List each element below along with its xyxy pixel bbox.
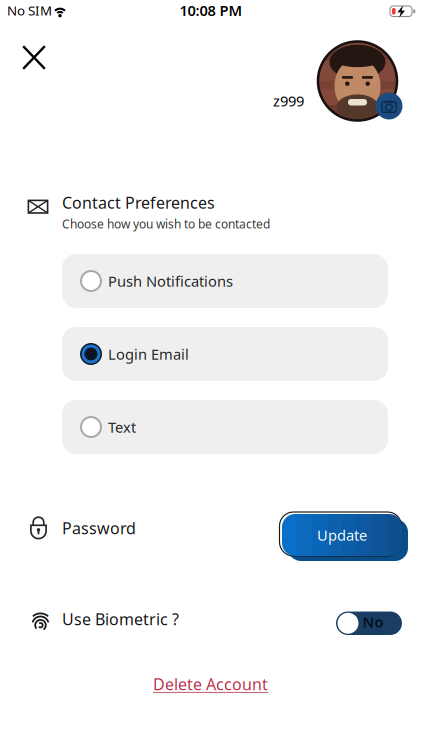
button[interactable]: Change profile photo — [375, 92, 402, 119]
staticText: z999 — [273, 91, 304, 110]
staticText: Choose how you wish to be contacted — [62, 216, 270, 232]
staticText: No SIM — [7, 1, 52, 19]
button[interactable]: Login Email — [62, 327, 388, 381]
button[interactable]: Push Notifications — [62, 254, 388, 308]
staticText: No — [362, 612, 383, 631]
staticText: Push Notifications — [108, 271, 233, 291]
button[interactable]: Text — [62, 400, 388, 454]
staticText: Text — [108, 417, 136, 437]
button[interactable]: Update — [270, 502, 404, 558]
staticText: Use Biometric ? — [62, 608, 179, 630]
staticText: 10:08 PM — [179, 0, 242, 20]
staticText: Password — [62, 517, 136, 539]
staticText: Update — [317, 525, 367, 545]
staticText: Contact Preferences — [62, 192, 215, 213]
button[interactable]: Delete Account — [153, 673, 268, 695]
button[interactable]: Use Biometric toggle — [336, 611, 402, 635]
button[interactable]: Close — [17, 40, 51, 74]
staticText: Login Email — [108, 344, 189, 364]
staticText: Delete Account — [153, 673, 268, 695]
